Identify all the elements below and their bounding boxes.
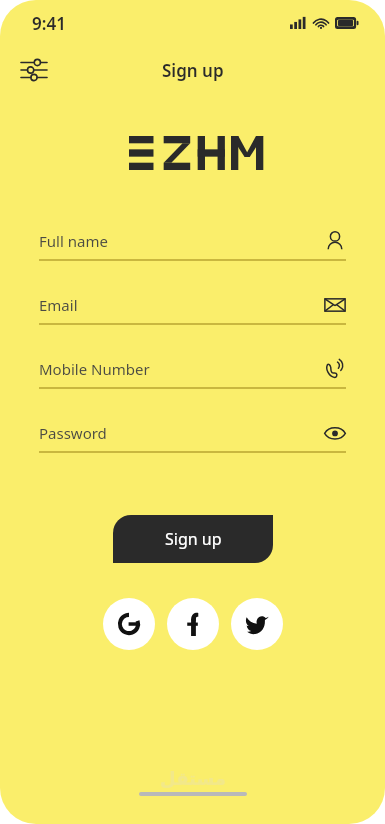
button[interactable]: Filters — [12, 48, 56, 92]
staticText: Email — [39, 295, 324, 315]
button[interactable]: Email — [39, 294, 346, 325]
staticText: Sign up — [165, 528, 222, 550]
staticText: 9:41 — [32, 12, 66, 35]
button[interactable]: Sign up — [113, 515, 273, 563]
button[interactable]: Sign up with Facebook — [167, 598, 219, 650]
button[interactable]: Mobile Number — [39, 358, 346, 389]
staticText: Full name — [39, 231, 324, 251]
button[interactable]: Sign up with Google — [103, 598, 155, 650]
button[interactable]: Full name — [39, 230, 346, 261]
staticText: Mobile Number — [39, 359, 324, 379]
button[interactable]: Password — [39, 422, 346, 453]
staticText: Password — [39, 423, 324, 443]
button[interactable]: Sign up with Twitter — [231, 598, 283, 650]
staticText: مستقل — [160, 768, 226, 789]
staticText: Sign up — [162, 59, 224, 82]
